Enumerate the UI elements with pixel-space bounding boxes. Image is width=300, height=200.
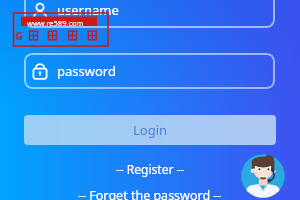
button[interactable]: password — [24, 53, 275, 89]
staticText: Login — [133, 121, 168, 139]
staticText: www.re589.com — [27, 18, 84, 28]
button[interactable]: -- Register -- — [116, 161, 185, 177]
button[interactable] — [241, 154, 285, 198]
staticText: G — [15, 28, 23, 43]
staticText: password — [57, 62, 116, 80]
button[interactable]: username — [24, 0, 275, 28]
staticText: username — [57, 1, 119, 19]
button[interactable]: -- Forget the password -- — [78, 187, 222, 200]
button[interactable]: Login — [24, 115, 276, 145]
